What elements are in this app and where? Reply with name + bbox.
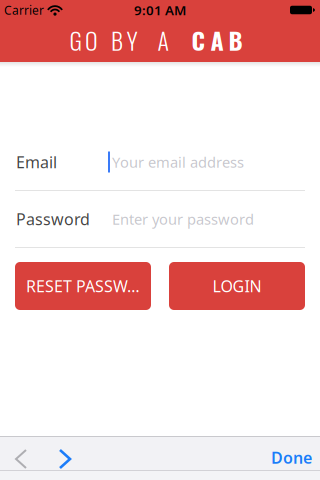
button[interactable]: Previous field xyxy=(0,450,26,468)
staticText: LOGIN xyxy=(212,275,261,297)
button[interactable]: Password xyxy=(0,191,320,247)
staticText: BY xyxy=(111,22,137,58)
button[interactable]: Done xyxy=(271,447,320,471)
button[interactable]: Email xyxy=(0,134,320,190)
staticText: CAB xyxy=(191,22,242,58)
staticText: 9:01 AM xyxy=(134,1,186,19)
staticText: Done xyxy=(271,447,312,468)
button[interactable]: LOGIN xyxy=(169,262,305,310)
staticText: A xyxy=(157,22,168,58)
staticText: RESET PASSW… xyxy=(26,275,140,297)
staticText: Email xyxy=(16,151,57,173)
staticText: Carrier xyxy=(4,2,44,18)
staticText: GO xyxy=(69,22,98,58)
button[interactable]: Next field xyxy=(26,450,70,468)
staticText: Password xyxy=(16,208,90,230)
button[interactable]: RESET PASSW… xyxy=(15,262,151,310)
staticText: Your email address xyxy=(112,152,244,172)
staticText: Enter your password xyxy=(112,209,254,229)
